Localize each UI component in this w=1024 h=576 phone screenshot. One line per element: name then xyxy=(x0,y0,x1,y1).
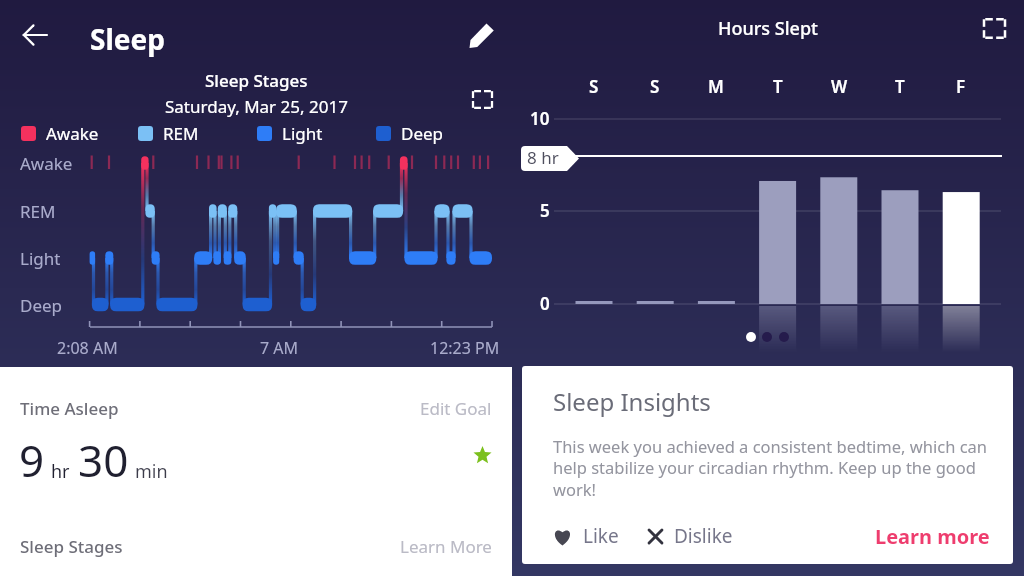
staticText: Sleep Stages xyxy=(20,535,123,558)
staticText: Deep xyxy=(20,294,63,317)
staticText: T xyxy=(895,75,905,98)
staticText: W xyxy=(831,75,848,98)
button[interactable]: 8 hr xyxy=(521,146,579,171)
button[interactable]: W xyxy=(825,72,853,100)
staticText: Sleep Stages xyxy=(205,69,308,92)
button[interactable]: M xyxy=(702,72,730,100)
button[interactable]: Expand chart xyxy=(462,79,502,119)
staticText: Saturday, Mar 25, 2017 xyxy=(165,95,348,118)
staticText: Edit Goal xyxy=(420,397,492,420)
button[interactable]: F xyxy=(947,72,975,100)
button[interactable]: Dislike xyxy=(647,516,733,556)
staticText: Dislike xyxy=(674,523,733,549)
staticText: Hours Slept xyxy=(718,16,818,41)
button[interactable]: S xyxy=(580,72,608,100)
staticText: hr xyxy=(51,459,70,484)
staticText: S xyxy=(589,75,599,98)
staticText: min xyxy=(135,459,168,484)
button[interactable]: Light xyxy=(257,122,323,144)
staticText: 8 hr xyxy=(527,146,559,169)
button[interactable]: Awake xyxy=(21,122,99,144)
staticText: 10 xyxy=(530,107,550,130)
staticText: 30 xyxy=(78,430,129,490)
staticText: Awake xyxy=(46,122,99,144)
staticText: Time Asleep xyxy=(20,397,119,420)
staticText: 5 xyxy=(540,199,550,222)
staticText: Deep xyxy=(401,122,444,144)
button[interactable]: REM xyxy=(138,122,199,144)
staticText: Learn More xyxy=(400,535,492,558)
button[interactable]: Learn More xyxy=(400,535,492,558)
button[interactable]: Edit xyxy=(457,11,505,59)
button[interactable]: T xyxy=(886,72,914,100)
button[interactable]: Deep xyxy=(376,122,444,144)
button[interactable]: Sleep Insights xyxy=(522,366,1013,564)
staticText: 7 AM xyxy=(260,337,299,359)
staticText: Sleep Insights xyxy=(553,385,711,418)
button[interactable]: Edit Goal xyxy=(420,397,492,420)
staticText: F xyxy=(956,75,966,98)
staticText: 12:23 PM xyxy=(430,337,500,359)
staticText: Light xyxy=(20,247,61,270)
button[interactable]: S xyxy=(641,72,669,100)
button[interactable]: Learn more xyxy=(875,516,990,556)
staticText: M xyxy=(708,75,724,98)
staticText: Sleep xyxy=(90,20,165,58)
staticText: Awake xyxy=(20,152,73,175)
staticText: 0 xyxy=(540,292,550,315)
staticText: 2:08 AM xyxy=(57,337,118,359)
staticText: Light xyxy=(282,122,323,144)
staticText: S xyxy=(650,75,660,98)
staticText: T xyxy=(773,75,783,98)
staticText: This week you achieved a consistent bedt… xyxy=(553,435,1001,501)
staticText: Learn more xyxy=(875,523,990,550)
button[interactable]: Like xyxy=(553,516,619,556)
button[interactable]: Expand chart xyxy=(974,8,1014,48)
staticText: Like xyxy=(583,523,619,549)
staticText: REM xyxy=(20,200,56,223)
button[interactable]: Back xyxy=(11,11,59,59)
button[interactable]: T xyxy=(764,72,792,100)
staticText: 9 xyxy=(19,430,45,490)
staticText: REM xyxy=(163,122,199,144)
